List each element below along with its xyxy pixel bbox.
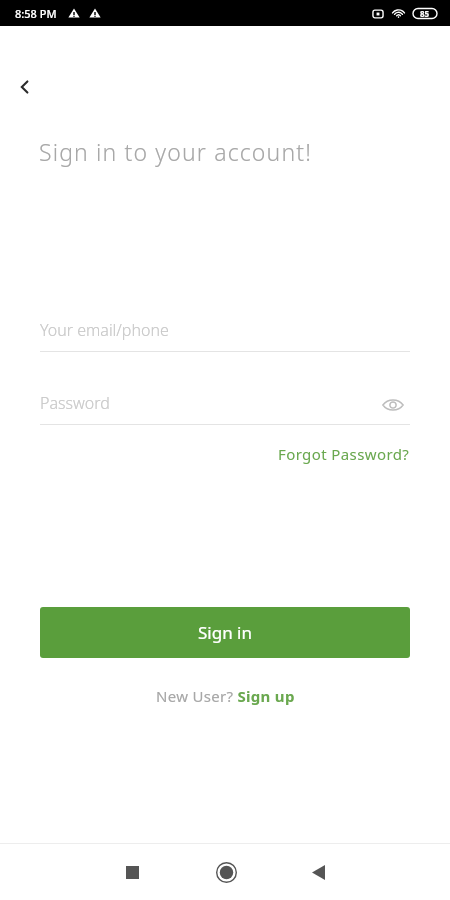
staticText: Your email/phone (40, 319, 169, 341)
staticText: New User? Sign up (156, 686, 295, 706)
button[interactable]: Show password (377, 389, 409, 421)
staticText: 8:58 PM (15, 6, 57, 21)
staticText: Forgot Password? (278, 444, 410, 464)
staticText: 85 (420, 8, 430, 19)
button[interactable]: Back (8, 70, 42, 104)
button[interactable]: Back (294, 848, 342, 896)
button[interactable]: Forgot Password? (278, 444, 410, 464)
staticText: Sign in to your account! (39, 136, 313, 167)
staticText: Sign in (198, 621, 252, 644)
button[interactable]: New User? Sign up (156, 686, 295, 706)
button[interactable]: Recents (108, 848, 156, 896)
button[interactable]: Your email/phone (0, 314, 450, 352)
button[interactable]: Password (0, 387, 450, 425)
button[interactable]: Sign in (40, 607, 410, 658)
staticText: Password (40, 392, 110, 414)
button[interactable]: Home (202, 848, 250, 896)
